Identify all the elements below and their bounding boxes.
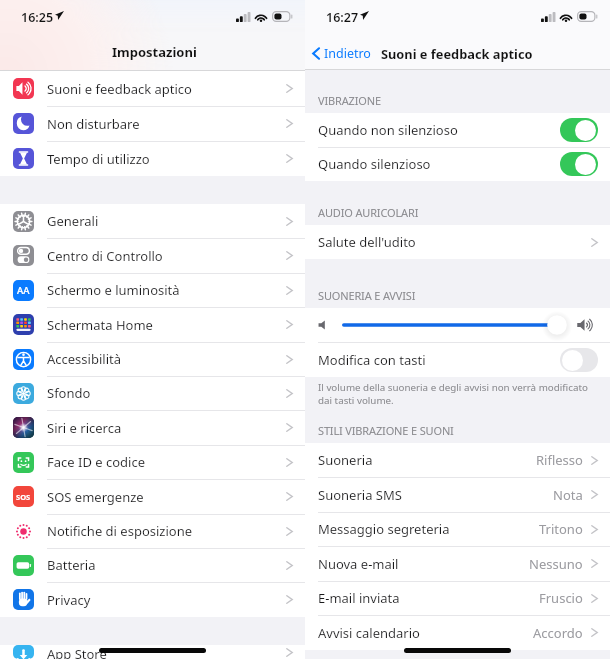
- staticText: Suoni e feedback aptico: [47, 80, 192, 98]
- staticText: Riflesso: [536, 451, 583, 469]
- staticText: Quando non silenzioso: [318, 121, 458, 139]
- staticText: Sfondo: [47, 384, 91, 402]
- button[interactable]: Batteria: [0, 548, 305, 582]
- staticText: Schermo e luminosità: [47, 281, 180, 299]
- staticText: Suoni e feedback aptico: [381, 45, 533, 62]
- button[interactable]: E-mail inviata: [305, 581, 610, 615]
- staticText: App Store: [47, 645, 107, 659]
- staticText: AUDIO AURICOLARI: [318, 205, 419, 220]
- staticText: AA: [17, 284, 30, 297]
- staticText: Face ID e codice: [47, 453, 146, 471]
- staticText: 16:25: [21, 9, 54, 26]
- button[interactable]: Tempo di utilizzo: [0, 141, 305, 176]
- staticText: Salute dell'udito: [318, 233, 416, 251]
- staticText: Tritono: [539, 520, 583, 538]
- staticText: Siri e ricerca: [47, 419, 122, 437]
- staticText: Schermata Home: [47, 316, 153, 334]
- staticText: Centro di Controllo: [47, 247, 163, 265]
- staticText: Generali: [47, 212, 99, 230]
- button[interactable]: Suoneria: [305, 443, 610, 477]
- staticText: Suoneria: [318, 451, 373, 469]
- button[interactable]: Suoni e feedback aptico: [0, 71, 305, 106]
- staticText: SUONERIA E AVVISI: [318, 288, 416, 303]
- button[interactable]: Siri e ricerca: [0, 410, 305, 445]
- button[interactable]: Messaggio segreteria: [305, 512, 610, 546]
- button[interactable]: Suoneria SMS: [305, 477, 610, 512]
- staticText: Avvisi calendario: [318, 624, 420, 642]
- staticText: Nessuno: [529, 555, 583, 573]
- button[interactable]: Accessibilità: [0, 342, 305, 376]
- button[interactable]: Quando silenzioso: [305, 147, 610, 181]
- staticText: Il volume della suoneria e degli avvisi …: [318, 381, 596, 407]
- staticText: Indietro: [324, 45, 371, 62]
- button[interactable]: Notifiche di esposizione: [0, 514, 305, 548]
- staticText: Modifica con tasti: [318, 351, 426, 369]
- button[interactable]: Nuova e-mail: [305, 546, 610, 581]
- button[interactable]: Non disturbare: [0, 106, 305, 141]
- button[interactable]: Indietro: [309, 43, 374, 64]
- staticText: Messaggio segreteria: [318, 520, 450, 538]
- staticText: Nuova e-mail: [318, 555, 399, 573]
- staticText: Impostazioni: [112, 43, 197, 61]
- button[interactable]: Salute dell'udito: [305, 225, 610, 259]
- staticText: Fruscio: [539, 589, 583, 607]
- button[interactable]: Face ID e codice: [0, 445, 305, 479]
- button[interactable]: Disattiva Quando silenzioso: [560, 152, 598, 176]
- staticText: Accordo: [533, 624, 583, 642]
- button[interactable]: Volume suoneria e avvisi: [305, 308, 610, 342]
- staticText: Batteria: [47, 556, 96, 574]
- staticText: Privacy: [47, 591, 91, 609]
- button[interactable]: Privacy: [0, 582, 305, 617]
- staticText: VIBRAZIONE: [318, 93, 381, 108]
- button[interactable]: Sfondo: [0, 376, 305, 410]
- button[interactable]: App Store: [0, 645, 305, 659]
- button[interactable]: AA: [0, 273, 305, 307]
- staticText: Nota: [553, 486, 583, 504]
- button[interactable]: Schermata Home: [0, 307, 305, 342]
- button[interactable]: Centro di Controllo: [0, 238, 305, 273]
- staticText: Tempo di utilizzo: [47, 150, 150, 168]
- button[interactable]: Disattiva Quando non silenzioso: [560, 118, 598, 142]
- button[interactable]: Quando non silenzioso: [305, 113, 610, 147]
- staticText: SOS emergenze: [47, 488, 144, 506]
- staticText: 16:27: [326, 9, 359, 26]
- staticText: STILI VIBRAZIONE E SUONI: [318, 423, 454, 438]
- staticText: Non disturbare: [47, 115, 140, 133]
- staticText: Suoneria SMS: [318, 486, 402, 504]
- staticText: SOS: [16, 492, 31, 502]
- button[interactable]: SOS: [0, 479, 305, 514]
- staticText: Accessibilità: [47, 350, 121, 368]
- button[interactable]: Modifica con tasti: [305, 342, 610, 377]
- staticText: Notifiche di esposizione: [47, 522, 193, 540]
- button[interactable]: Avvisi calendario: [305, 615, 610, 650]
- button[interactable]: Attiva Modifica con tasti: [560, 348, 598, 372]
- button[interactable]: Generali: [0, 204, 305, 238]
- staticText: E-mail inviata: [318, 589, 400, 607]
- staticText: Quando silenzioso: [318, 155, 431, 173]
